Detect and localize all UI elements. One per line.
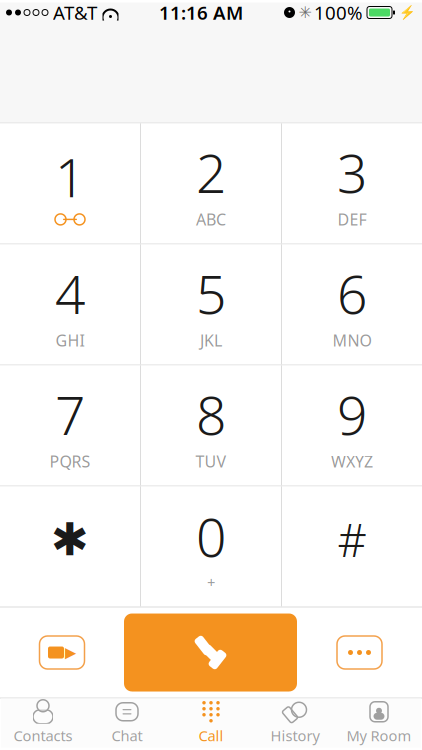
button[interactable]: ✱ xyxy=(0,486,140,606)
button[interactable]: Chat xyxy=(85,698,169,747)
button[interactable]: 4 xyxy=(0,244,140,364)
button[interactable]: 9 xyxy=(282,365,422,485)
button[interactable]: # xyxy=(282,486,422,606)
staticText: 4 xyxy=(55,258,85,329)
staticText: 11:16 AM xyxy=(159,0,243,25)
staticText: 7 xyxy=(55,379,85,450)
button[interactable]: 7 xyxy=(0,365,140,485)
button[interactable]: Call xyxy=(124,613,297,691)
staticText: 8 xyxy=(196,379,226,450)
button[interactable]: 5 xyxy=(141,244,281,364)
staticText: My Room xyxy=(346,726,411,745)
staticText: 1 xyxy=(55,141,85,212)
staticText: TUV xyxy=(195,451,226,472)
staticText: 0 xyxy=(196,501,226,572)
staticText: Call xyxy=(198,726,223,745)
staticText: ✳ xyxy=(298,3,311,22)
button[interactable]: 2 xyxy=(141,123,281,243)
button[interactable]: More options xyxy=(297,613,422,691)
staticText: WXYZ xyxy=(331,451,373,472)
staticText: ▶ xyxy=(65,644,76,661)
button[interactable]: Call xyxy=(169,698,253,747)
staticText: 2 xyxy=(196,137,226,208)
staticText: # xyxy=(337,509,366,570)
staticText: History xyxy=(270,726,319,745)
staticText: 9 xyxy=(337,379,367,450)
staticText: JKL xyxy=(200,330,222,351)
button[interactable]: 3 xyxy=(282,123,422,243)
staticText: PQRS xyxy=(49,451,90,472)
button[interactable]: History xyxy=(253,698,337,747)
button[interactable]: Contacts xyxy=(1,698,85,747)
button[interactable]: My Room xyxy=(337,698,421,747)
staticText: DEF xyxy=(337,209,366,230)
staticText: + xyxy=(207,573,215,592)
staticText: 6 xyxy=(337,258,367,329)
staticText: AT&T xyxy=(53,0,97,25)
button[interactable]: 1 xyxy=(0,123,140,243)
staticText: Contacts xyxy=(13,726,72,745)
staticText: Chat xyxy=(111,726,142,745)
button[interactable]: 8 xyxy=(141,365,281,485)
staticText: 100% xyxy=(314,0,363,25)
staticText: MNO xyxy=(332,330,371,351)
staticText: ⚡ xyxy=(399,5,416,20)
button[interactable]: 6 xyxy=(282,244,422,364)
staticText: 5 xyxy=(196,258,226,329)
staticText: 3 xyxy=(337,137,367,208)
button[interactable]: Video call xyxy=(0,613,124,691)
staticText: ABC xyxy=(196,209,226,230)
staticText: GHI xyxy=(55,330,84,351)
staticText: ✱ xyxy=(51,514,89,565)
button[interactable]: 0 xyxy=(141,486,281,606)
